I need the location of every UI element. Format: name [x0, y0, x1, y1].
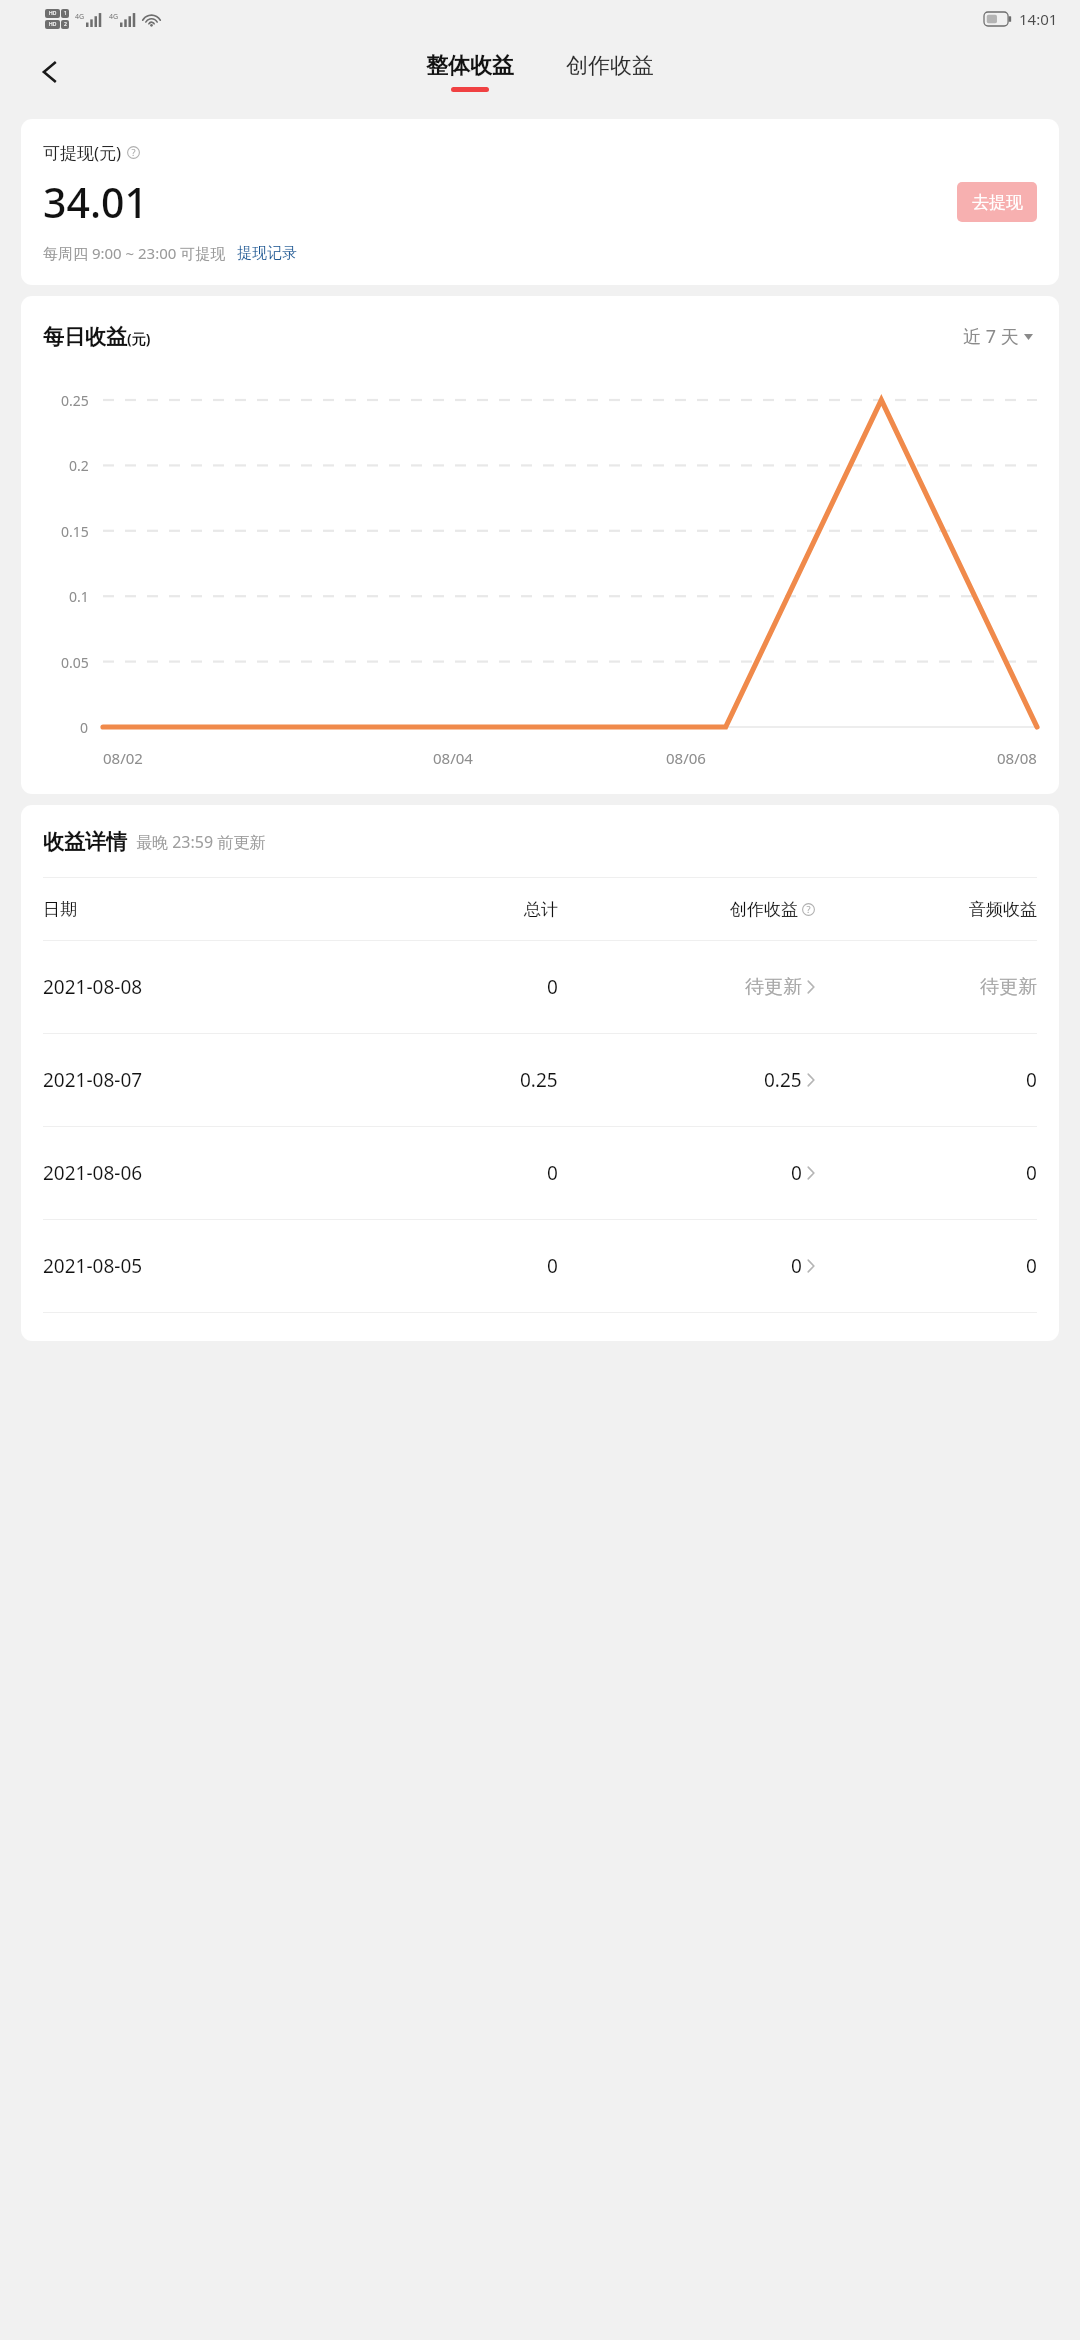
- staticText: 0: [547, 974, 558, 1000]
- staticText: 整体收益: [426, 52, 514, 80]
- staticText: 待更新: [980, 975, 1037, 999]
- staticText: 近 7 天: [963, 324, 1019, 349]
- staticText: 34.01: [43, 174, 148, 230]
- staticText: ?: [806, 903, 811, 916]
- staticText: 0.25: [61, 391, 89, 409]
- button[interactable]: Back: [22, 44, 78, 100]
- button[interactable]: 2021-08-08: [43, 941, 1037, 1033]
- staticText: 0: [1026, 1067, 1037, 1093]
- button[interactable]: 近 7 天: [959, 320, 1037, 353]
- staticText: 总计: [524, 899, 558, 920]
- button[interactable]: 创作收益: [558, 50, 662, 94]
- staticText: 08/06: [666, 748, 706, 768]
- staticText: 创作收益: [730, 899, 798, 920]
- staticText: 0: [1026, 1160, 1037, 1186]
- staticText: ?: [131, 146, 136, 159]
- staticText: HD: [49, 21, 57, 28]
- staticText: 2021-08-07: [43, 1067, 359, 1093]
- staticText: 0: [791, 1160, 802, 1186]
- button[interactable]: 2021-08-07: [43, 1034, 1037, 1126]
- staticText: 14:01: [1019, 9, 1058, 29]
- staticText: 1: [64, 10, 67, 17]
- staticText: 0.25: [764, 1067, 802, 1093]
- staticText: 2021-08-06: [43, 1160, 359, 1186]
- staticText: 最晚 23:59 前更新: [136, 831, 266, 853]
- staticText: 4G: [75, 12, 85, 22]
- staticText: 0.25: [520, 1067, 558, 1093]
- staticText: 收益详情: [43, 829, 127, 855]
- staticText: 每周四 9:00 ~ 23:00 可提现: [43, 243, 226, 263]
- staticText: 0: [80, 718, 89, 736]
- staticText: 每日收益: [43, 324, 127, 350]
- staticText: 08/08: [997, 748, 1037, 768]
- staticText: (元): [127, 329, 151, 348]
- button[interactable]: 整体收益: [418, 50, 522, 94]
- button[interactable]: 提现记录: [237, 244, 297, 263]
- staticText: 2: [64, 21, 67, 28]
- staticText: 0: [1026, 1253, 1037, 1279]
- staticText: 08/04: [433, 748, 473, 768]
- button[interactable]: 去提现: [957, 182, 1037, 222]
- staticText: 0.15: [61, 522, 89, 540]
- staticText: 0.05: [61, 653, 89, 671]
- staticText: 0: [791, 1253, 802, 1279]
- staticText: 提现记录: [237, 244, 297, 263]
- staticText: 可提现(元): [43, 141, 122, 164]
- staticText: 0: [547, 1253, 558, 1279]
- button[interactable]: 2021-08-05: [43, 1220, 1037, 1312]
- staticText: 待更新: [745, 975, 802, 999]
- staticText: 创作收益: [566, 52, 654, 80]
- staticText: 0: [547, 1160, 558, 1186]
- staticText: 音频收益: [969, 899, 1037, 920]
- staticText: 日期: [43, 899, 359, 920]
- staticText: 0.1: [69, 587, 89, 605]
- staticText: 08/02: [103, 748, 143, 768]
- button[interactable]: 2021-08-06: [43, 1127, 1037, 1219]
- staticText: 2021-08-05: [43, 1253, 359, 1279]
- staticText: 0.2: [69, 456, 89, 474]
- staticText: 4G: [109, 12, 119, 22]
- staticText: 2021-08-08: [43, 974, 359, 1000]
- staticText: HD: [49, 10, 57, 17]
- staticText: 去提现: [972, 192, 1023, 213]
